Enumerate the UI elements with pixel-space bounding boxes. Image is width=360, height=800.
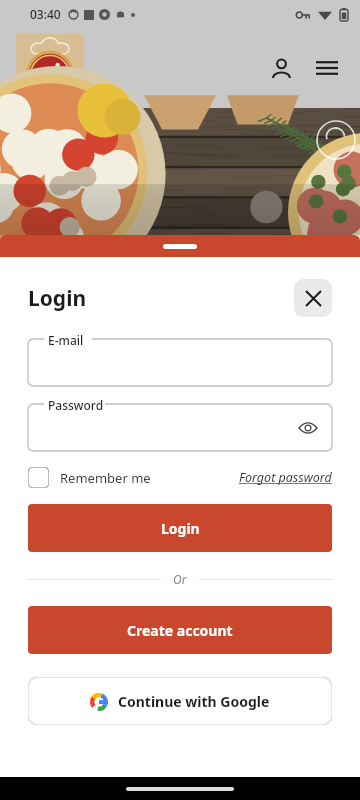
button[interactable]: Remember me — [28, 467, 151, 488]
staticText: Remember me — [60, 469, 151, 487]
button[interactable]: Menu — [310, 51, 344, 85]
button[interactable]: Show password — [294, 414, 322, 442]
staticText: Password — [48, 397, 104, 413]
button[interactable]: Continue with Google — [28, 677, 332, 725]
button[interactable]: Forgot password — [239, 469, 332, 486]
staticText: E-mail — [48, 332, 84, 348]
button[interactable]: Close — [294, 279, 332, 317]
button[interactable]: Drag handle — [0, 235, 360, 257]
staticText: Forgot password — [239, 469, 332, 486]
staticText: 03:40 — [30, 6, 61, 22]
button[interactable]: Elegante Pizza logo — [16, 34, 84, 102]
button[interactable]: Account — [264, 51, 298, 85]
button[interactable]: Login — [28, 504, 332, 552]
staticText: Login — [28, 284, 87, 313]
staticText: Create account — [127, 621, 233, 640]
staticText: Login — [161, 519, 200, 538]
button[interactable]: Halal certified — [316, 120, 356, 160]
staticText: Continue with Google — [118, 692, 270, 711]
button[interactable]: Create account — [28, 606, 332, 654]
staticText: Or — [173, 571, 187, 587]
